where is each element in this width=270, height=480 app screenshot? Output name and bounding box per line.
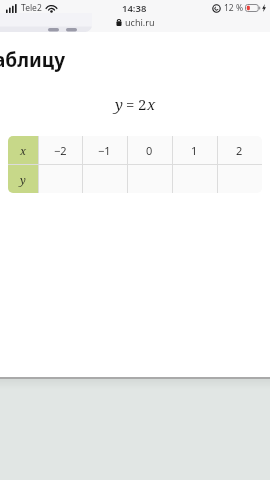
staticText: y [115, 94, 123, 114]
staticText: uchi.ru [125, 16, 155, 28]
button[interactable]: x [8, 136, 262, 193]
staticText: 2 [138, 94, 147, 114]
staticText: Tele2 [21, 2, 42, 14]
staticText: −2 [54, 143, 67, 158]
staticText: 14:38 [122, 2, 147, 15]
button[interactable]: uchi.ru [0, 15, 270, 29]
staticText: аблицу [0, 47, 66, 73]
staticText: 0 [146, 143, 153, 158]
staticText: x [147, 94, 156, 114]
staticText: 12 % [224, 2, 243, 14]
button[interactable]: Tabs [0, 13, 92, 32]
staticText: 2 [236, 143, 243, 158]
staticText: x [20, 143, 27, 158]
staticText: 1 [191, 143, 198, 158]
staticText: −1 [98, 143, 111, 158]
staticText: y [20, 172, 26, 187]
staticText: = [126, 94, 135, 114]
